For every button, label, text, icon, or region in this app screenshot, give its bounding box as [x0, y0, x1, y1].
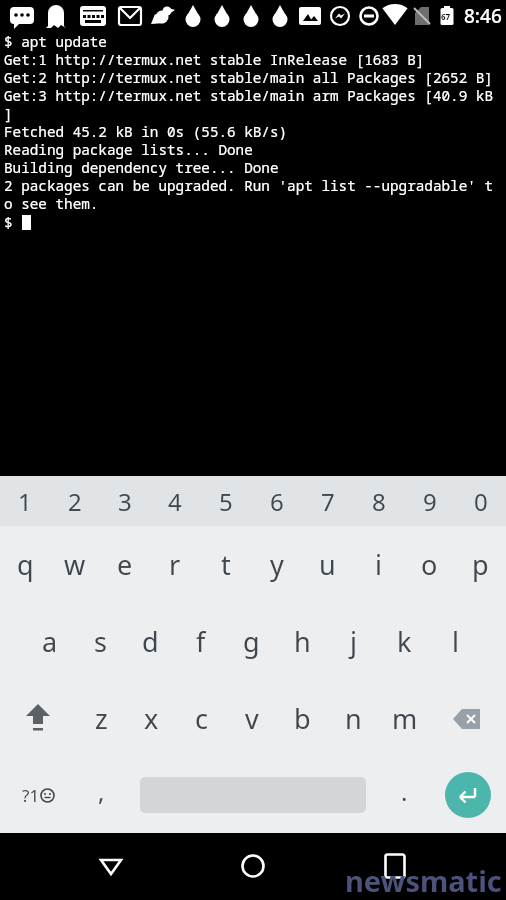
- button[interactable]: [228, 841, 278, 891]
- staticText: q: [17, 546, 34, 583]
- button[interactable]: d: [125, 603, 175, 680]
- button[interactable]: [370, 841, 420, 891]
- staticText: g: [243, 623, 260, 660]
- button[interactable]: u: [302, 526, 353, 603]
- button[interactable]: e: [100, 526, 150, 603]
- staticText: e: [117, 546, 133, 583]
- button[interactable]: [86, 841, 136, 891]
- button[interactable]: ,: [76, 757, 127, 833]
- staticText: k: [397, 623, 412, 660]
- button[interactable]: 5: [200, 476, 251, 526]
- staticText: s: [94, 623, 107, 660]
- button[interactable]: l: [430, 603, 481, 680]
- staticText: 4: [168, 485, 182, 518]
- staticText: newsmatic: [345, 861, 502, 900]
- button[interactable]: t: [200, 526, 251, 603]
- button[interactable]: 0: [455, 476, 506, 526]
- button[interactable]: j: [328, 603, 379, 680]
- staticText: n: [345, 700, 362, 737]
- staticText: f: [196, 623, 206, 660]
- staticText: u: [319, 546, 336, 583]
- staticText: w: [64, 546, 86, 583]
- staticText: ,: [98, 775, 105, 808]
- button[interactable]: s: [75, 603, 125, 680]
- button[interactable]: [430, 757, 506, 833]
- button[interactable]: 1: [0, 476, 50, 526]
- button[interactable]: z: [76, 680, 126, 757]
- button[interactable]: g: [226, 603, 277, 680]
- button[interactable]: n: [328, 680, 379, 757]
- button[interactable]: x: [126, 680, 176, 757]
- staticText: 67: [441, 11, 451, 22]
- staticText: 5: [219, 485, 233, 518]
- button[interactable]: 8: [353, 476, 404, 526]
- button[interactable]: [430, 680, 506, 757]
- button[interactable]: .: [379, 757, 430, 833]
- staticText: z: [95, 700, 108, 737]
- button[interactable]: a: [25, 603, 75, 680]
- staticText: m: [392, 700, 418, 737]
- staticText: 9: [423, 485, 437, 518]
- staticText: j: [350, 623, 357, 660]
- button[interactable]: [127, 757, 379, 833]
- staticText: x: [144, 700, 159, 737]
- button[interactable]: f: [175, 603, 226, 680]
- staticText: 6: [270, 485, 284, 518]
- button[interactable]: v: [226, 680, 277, 757]
- button[interactable]: k: [379, 603, 430, 680]
- button[interactable]: m: [379, 680, 430, 757]
- staticText: r: [169, 546, 181, 583]
- staticText: 1: [18, 485, 32, 518]
- staticText: p: [472, 546, 489, 583]
- staticText: v: [245, 700, 259, 737]
- staticText: c: [195, 700, 208, 737]
- staticText: l: [452, 623, 459, 660]
- staticText: $ apt update Get:1 http://termux.net sta…: [4, 32, 493, 213]
- staticText: ?1: [22, 784, 40, 807]
- staticText: 8:46: [464, 3, 502, 29]
- staticText: a: [42, 623, 58, 660]
- staticText: y: [270, 546, 284, 583]
- button[interactable]: c: [176, 680, 226, 757]
- staticText: o: [421, 546, 438, 583]
- button[interactable]: q: [0, 526, 50, 603]
- button[interactable]: w: [50, 526, 100, 603]
- button[interactable]: 3: [100, 476, 150, 526]
- button[interactable]: 6: [251, 476, 302, 526]
- staticText: 0: [474, 485, 488, 518]
- staticText: 3: [118, 485, 132, 518]
- button[interactable]: 9: [404, 476, 455, 526]
- staticText: t: [221, 546, 231, 583]
- button[interactable]: o: [404, 526, 455, 603]
- staticText: h: [294, 623, 311, 660]
- button[interactable]: y: [251, 526, 302, 603]
- staticText: .: [401, 775, 408, 808]
- button[interactable]: r: [150, 526, 200, 603]
- button[interactable]: b: [277, 680, 328, 757]
- button[interactable]: ?1: [0, 757, 76, 833]
- button[interactable]: 7: [302, 476, 353, 526]
- staticText: 2: [68, 485, 82, 518]
- staticText: b: [294, 700, 311, 737]
- staticText: $: [4, 213, 22, 232]
- button[interactable]: 2: [50, 476, 100, 526]
- staticText: 7: [321, 485, 335, 518]
- button[interactable]: [0, 680, 76, 757]
- staticText: 8: [372, 485, 386, 518]
- button[interactable]: p: [455, 526, 506, 603]
- button[interactable]: 4: [150, 476, 200, 526]
- staticText: d: [142, 623, 159, 660]
- button[interactable]: i: [353, 526, 404, 603]
- button[interactable]: h: [277, 603, 328, 680]
- staticText: i: [375, 546, 382, 583]
